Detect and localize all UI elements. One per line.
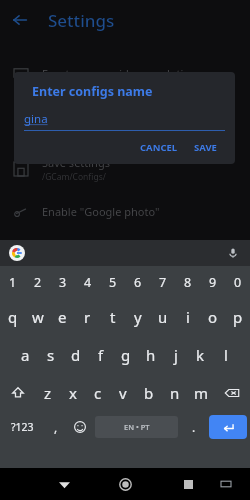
staticText: Enable "Google photo" — [42, 204, 160, 219]
staticText: k — [196, 345, 205, 365]
staticText: o — [208, 307, 218, 327]
staticText: p — [233, 307, 243, 327]
staticText: e — [58, 307, 67, 327]
button[interactable]: d — [63, 336, 88, 374]
button[interactable]: y — [125, 298, 150, 336]
staticText: i — [186, 307, 190, 327]
button[interactable]: w — [25, 298, 50, 336]
button[interactable]: x — [60, 374, 85, 412]
staticText: q — [8, 307, 18, 327]
button[interactable]: 9 — [200, 266, 225, 298]
button[interactable]: . — [181, 412, 206, 442]
button[interactable]: Enter — [209, 415, 247, 439]
button[interactable]: b — [136, 374, 162, 412]
staticText: a — [21, 345, 30, 365]
button[interactable]: Keyboard — [216, 474, 236, 494]
button[interactable]: 4 — [75, 266, 100, 298]
button[interactable]: ?123 — [0, 412, 45, 442]
button[interactable]: k — [188, 336, 213, 374]
button[interactable]: Shift — [0, 374, 35, 412]
staticText: m — [194, 383, 209, 403]
button[interactable]: , — [45, 412, 67, 442]
button[interactable]: 0 — [225, 266, 250, 298]
button[interactable]: 1 — [0, 266, 25, 298]
staticText: g — [121, 345, 131, 365]
staticText: v — [119, 383, 127, 403]
staticText: u — [158, 307, 168, 327]
button[interactable]: m — [188, 374, 214, 412]
staticText: . — [192, 419, 196, 435]
button[interactable]: l — [213, 336, 238, 374]
staticText: Enter configs name — [32, 83, 153, 100]
staticText: 3 — [59, 274, 67, 291]
button[interactable]: SAVE — [188, 137, 223, 158]
staticText: CANCEL — [140, 141, 178, 154]
button[interactable]: n — [162, 374, 188, 412]
button[interactable]: 7 — [150, 266, 175, 298]
button[interactable]: v — [110, 374, 136, 412]
button[interactable]: f — [88, 336, 113, 374]
staticText: , — [54, 419, 58, 435]
button[interactable]: Google — [9, 245, 25, 261]
staticText: 8 — [184, 274, 192, 291]
button[interactable]: q — [0, 298, 25, 336]
staticText: r — [84, 307, 91, 327]
button[interactable]: Recents — [176, 472, 200, 496]
staticText: w — [32, 307, 44, 327]
button[interactable]: Back — [52, 472, 76, 496]
staticText: z — [44, 383, 52, 403]
button[interactable]: 6 — [125, 266, 150, 298]
staticText: n — [170, 383, 180, 403]
staticText: EN • PT — [124, 422, 150, 432]
staticText: 6 — [134, 274, 142, 291]
staticText: 4 — [84, 274, 92, 291]
staticText: /GCam/Configs/ — [42, 171, 106, 183]
staticText: Save settings — [42, 155, 110, 170]
button[interactable]: z — [35, 374, 60, 412]
staticText: d — [71, 345, 81, 365]
button[interactable]: g — [113, 336, 138, 374]
staticText: 0 — [234, 274, 242, 291]
button[interactable]: 3 — [50, 266, 75, 298]
button[interactable]: Enable "Google photo" — [0, 194, 250, 228]
button[interactable]: Emoji — [67, 412, 92, 442]
button[interactable]: CANCEL — [134, 137, 184, 158]
button[interactable]: Save settings — [0, 152, 250, 186]
staticText: ?123 — [11, 420, 34, 434]
button[interactable]: EN • PT — [95, 416, 178, 438]
staticText: j — [174, 345, 178, 365]
staticText: l — [224, 345, 228, 365]
button[interactable]: Front camera video resolution — [0, 56, 250, 90]
button[interactable]: c — [85, 374, 110, 412]
button[interactable]: a — [12, 336, 38, 374]
button[interactable]: Backspace — [214, 374, 250, 412]
button[interactable]: u — [150, 298, 175, 336]
staticText: SAVE — [194, 141, 217, 154]
button[interactable]: t — [100, 298, 125, 336]
button[interactable]: p — [225, 298, 250, 336]
staticText: c — [94, 383, 102, 403]
button[interactable]: Voice input — [224, 244, 242, 262]
button[interactable]: 8 — [175, 266, 200, 298]
button[interactable]: 2 — [25, 266, 50, 298]
staticText: y — [134, 307, 142, 327]
button[interactable]: o — [200, 298, 225, 336]
button[interactable]: Home — [113, 472, 137, 496]
button[interactable]: h — [138, 336, 163, 374]
staticText: gina — [24, 111, 48, 127]
staticText: s — [47, 345, 55, 365]
button[interactable]: e — [50, 298, 75, 336]
button[interactable]: Back — [0, 0, 40, 40]
button[interactable]: s — [38, 336, 63, 374]
button[interactable]: i — [175, 298, 200, 336]
button[interactable]: j — [163, 336, 188, 374]
staticText: b — [144, 383, 154, 403]
staticText: 7 — [159, 274, 167, 291]
staticText: 2 — [34, 274, 42, 291]
button[interactable]: r — [75, 298, 100, 336]
button[interactable]: 5 — [100, 266, 125, 298]
staticText: x — [69, 383, 77, 403]
staticText: 9 — [209, 274, 217, 291]
staticText: f — [98, 345, 104, 365]
staticText: 5 — [109, 274, 117, 291]
